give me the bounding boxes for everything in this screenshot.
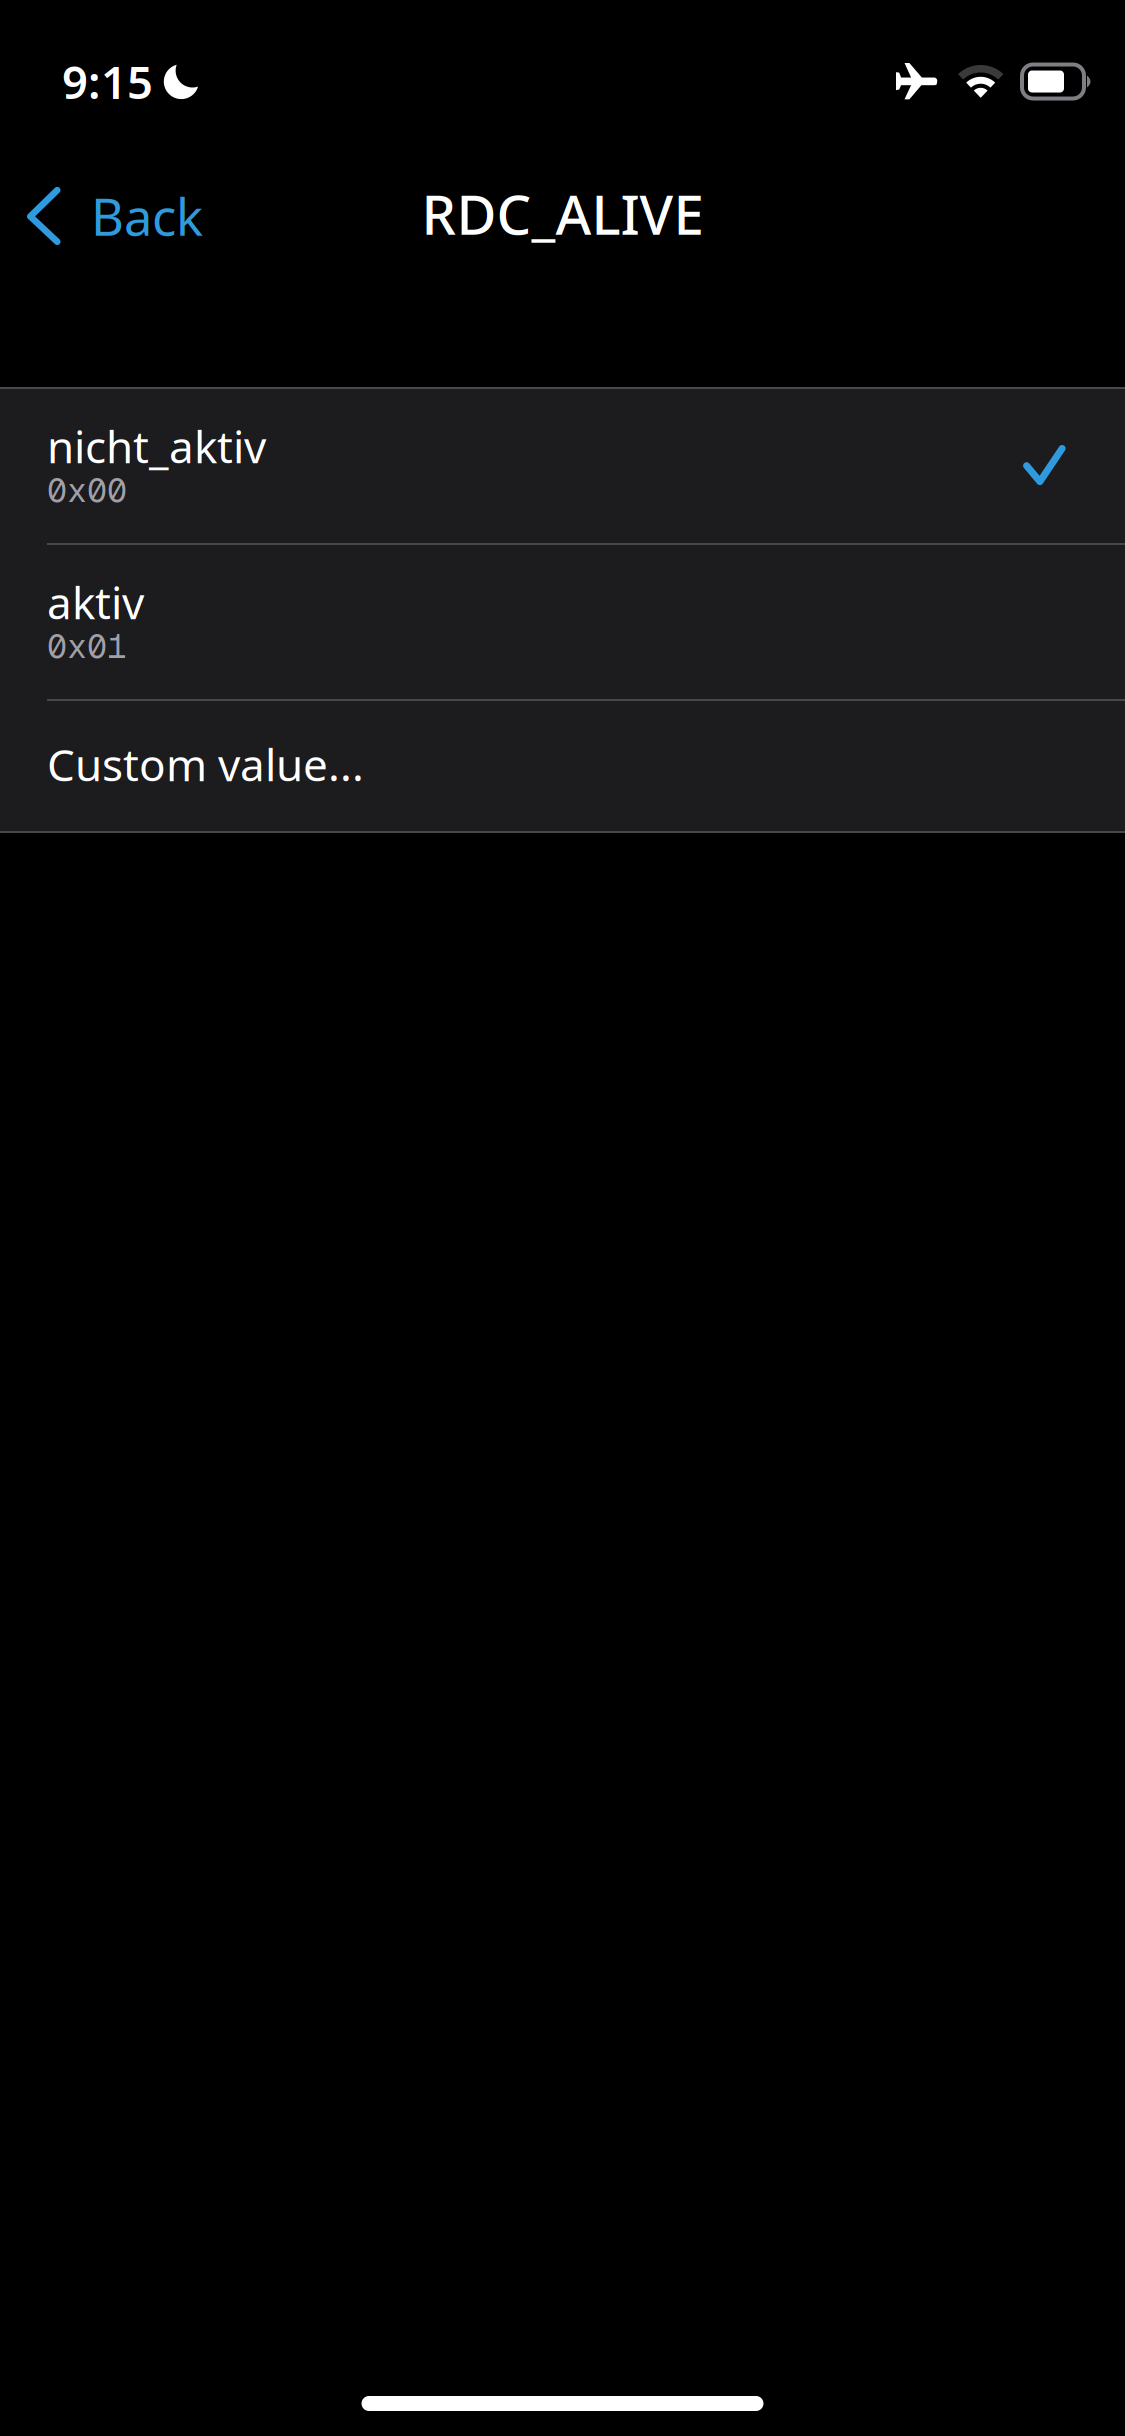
button[interactable]: nicht_aktiv [0,389,1125,543]
button[interactable]: Custom value... [0,701,1125,831]
staticText: Custom value... [47,735,364,793]
staticText: aktiv [47,573,144,631]
staticText: RDC_ALIVE [421,177,703,250]
button[interactable]: Back [0,163,227,264]
button[interactable]: aktiv [0,545,1125,699]
staticText: nicht_aktiv [47,417,266,475]
staticText: 0x00 [47,468,127,512]
staticText: Back [91,182,203,250]
staticText: 0x01 [47,624,127,668]
staticText: 9:15 [62,51,153,112]
